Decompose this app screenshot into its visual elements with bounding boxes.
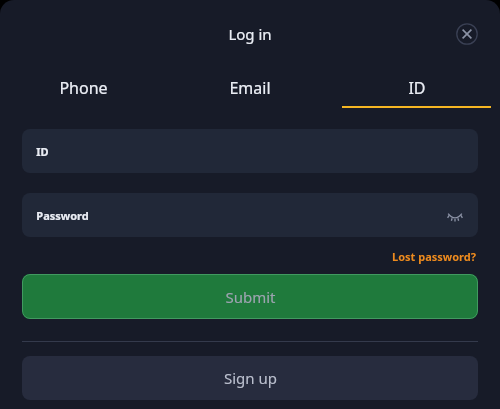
button[interactable]: Phone (0, 68, 166, 108)
staticText: Email (229, 77, 271, 99)
button[interactable]: Close (450, 17, 484, 51)
staticText: Submit (225, 287, 276, 307)
staticText: Password (36, 208, 89, 223)
button[interactable]: Password (22, 193, 478, 237)
button[interactable]: Lost password? (390, 247, 478, 266)
staticText: ID (408, 77, 426, 99)
button[interactable]: ID (22, 129, 478, 173)
button[interactable]: Show password (440, 200, 470, 230)
staticText: Lost password? (392, 249, 476, 264)
button[interactable]: Sign up (22, 356, 478, 400)
staticText: Phone (59, 77, 108, 99)
button[interactable]: ID (333, 68, 500, 108)
staticText: Sign up (224, 368, 277, 388)
button[interactable]: Email (166, 68, 333, 108)
button[interactable]: Submit (22, 274, 478, 319)
staticText: ID (36, 144, 49, 159)
staticText: Log in (228, 24, 272, 44)
